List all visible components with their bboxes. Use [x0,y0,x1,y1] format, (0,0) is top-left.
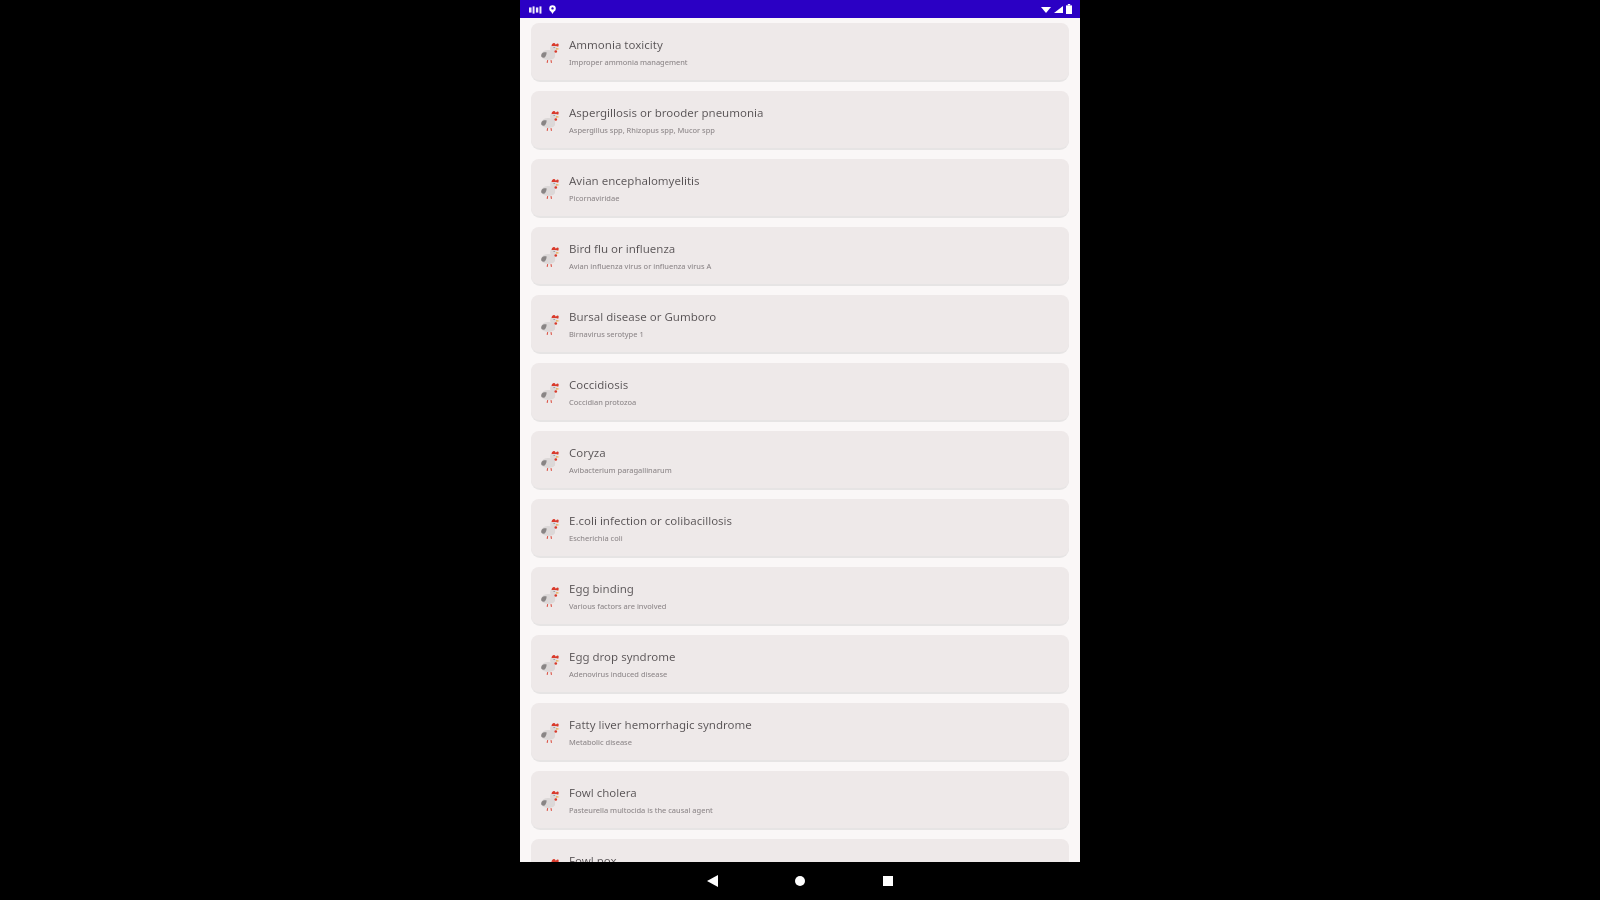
button[interactable]: Fatty liver hemorrhagic syndrome [531,703,1069,760]
button[interactable]: Egg binding [531,567,1069,624]
staticText: Aspergillosis or brooder pneumonia [569,105,764,121]
staticText: Coryza [569,445,606,461]
button[interactable]: Avian encephalomyelitis [531,159,1069,216]
staticText: Bursal disease or Gumboro [569,309,717,325]
staticText: Pasteurella multocida is the causal agen… [569,805,713,815]
staticText: Egg drop syndrome [569,649,676,665]
button[interactable]: E.coli infection or colibacillosis [531,499,1069,556]
button[interactable]: Fowl pox [531,839,1069,862]
staticText: Fatty liver hemorrhagic syndrome [569,717,752,733]
button[interactable]: Recent apps [844,862,932,900]
button[interactable]: Home [756,862,844,900]
button[interactable]: Coryza [531,431,1069,488]
staticText: Improper ammonia management [569,57,688,67]
button[interactable]: Bursal disease or Gumboro [531,295,1069,352]
staticText: Bird flu or influenza [569,241,676,257]
staticText: Egg binding [569,581,634,597]
staticText: Coccidian protozoa [569,397,637,407]
button[interactable]: Bird flu or influenza [531,227,1069,284]
staticText: Fowl pox [569,853,617,862]
staticText: Ammonia toxicity [569,37,663,53]
staticText: Coccidiosis [569,377,629,393]
button[interactable]: Aspergillosis or brooder pneumonia [531,91,1069,148]
button[interactable]: Coccidiosis [531,363,1069,420]
staticText: Escherichia coli [569,533,623,543]
staticText: Metabolic disease [569,737,632,747]
staticText: Avian encephalomyelitis [569,173,700,189]
staticText: Birnavirus serotype 1 [569,329,644,339]
staticText: Various factors are involved [569,601,667,611]
button[interactable]: Egg drop syndrome [531,635,1069,692]
button[interactable]: Back [668,862,756,900]
staticText: Fowl cholera [569,785,637,801]
staticText: Avibacterium paragallinarum [569,465,672,475]
staticText: Picornaviridae [569,193,620,203]
staticText: Aspergillus spp, Rhizopus spp, Mucor spp [569,125,715,135]
staticText: E.coli infection or colibacillosis [569,513,733,529]
button[interactable]: Fowl cholera [531,771,1069,828]
staticText: Avian influenza virus or influenza virus… [569,261,712,271]
staticText: Adenovirus induced disease [569,669,668,679]
button[interactable]: Ammonia toxicity [531,23,1069,80]
